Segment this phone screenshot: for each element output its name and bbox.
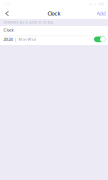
staticText: | [12,37,18,42]
staticText: Clock [3,27,13,33]
staticText: Reminded you to press 'Fit' to stop [3,21,53,24]
button[interactable]: Add [93,8,108,19]
button[interactable]: Back [0,9,12,18]
staticText: 20:24 [3,37,12,42]
button[interactable]: Alarm enabled [94,36,105,42]
staticText: Add [96,10,105,17]
staticText: Mon Wed [18,37,35,42]
button[interactable]: Clock [0,26,108,36]
staticText: Clock [47,10,60,17]
